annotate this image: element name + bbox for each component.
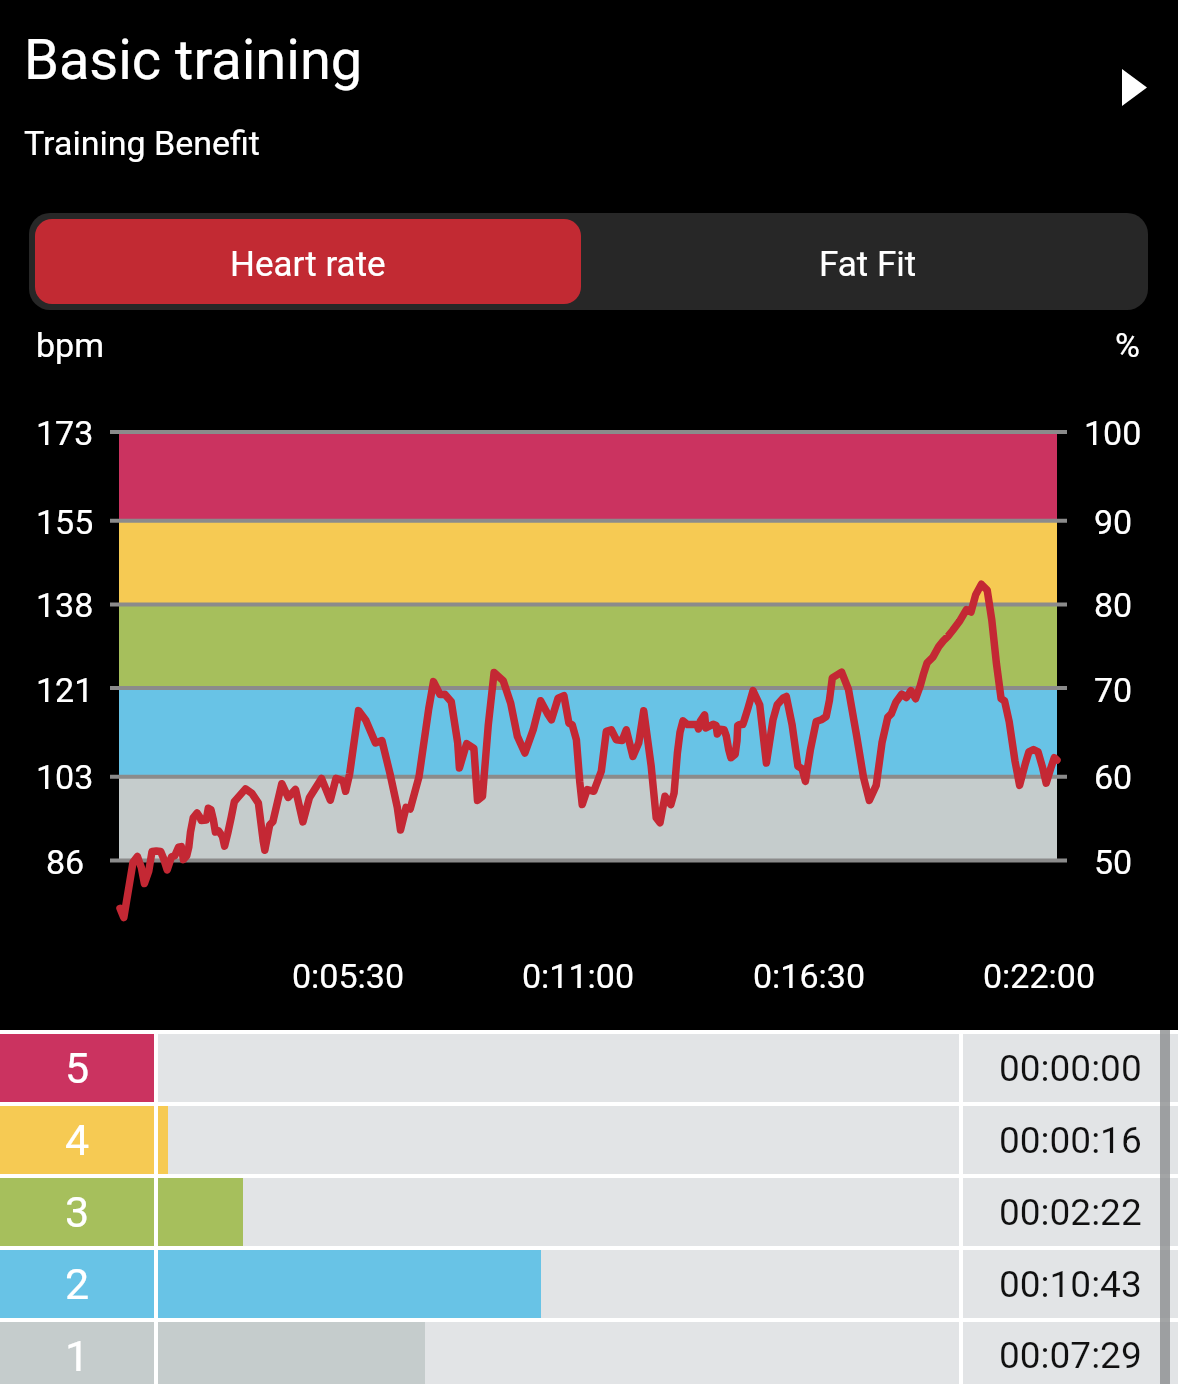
staticText: 00:00:00 [999,1047,1142,1090]
staticText: Training Benefit [24,123,260,163]
button[interactable]: 4 [0,1106,1178,1174]
staticText: 0:05:30 [292,956,405,996]
staticText: 90 [1094,502,1133,542]
staticText: 100 [1084,413,1142,453]
staticText: % [1115,325,1140,365]
button[interactable]: Heart rate [35,219,581,304]
staticText: 0:16:30 [753,956,866,996]
staticText: 5 [65,1043,90,1093]
staticText: 00:00:16 [999,1119,1142,1162]
staticText: 155 [36,502,94,542]
staticText: bpm [36,325,104,365]
staticText: 60 [1094,757,1133,797]
staticText: 00:10:43 [999,1263,1142,1306]
staticText: 121 [36,670,94,710]
staticText: 3 [65,1187,90,1237]
staticText: 0:22:00 [983,956,1096,996]
staticText: 70 [1094,670,1133,710]
button[interactable]: 5 [0,1034,1178,1102]
button[interactable]: 1 [0,1322,1178,1384]
staticText: 00:02:22 [999,1191,1142,1234]
staticText: 173 [36,413,94,453]
staticText: 103 [36,757,94,797]
button[interactable]: 3 [0,1178,1178,1246]
staticText: 80 [1094,585,1133,625]
staticText: 4 [65,1115,90,1165]
staticText: Basic training [24,27,363,93]
staticText: 138 [36,585,94,625]
button[interactable]: 2 [0,1250,1178,1318]
staticText: 50 [1094,842,1133,882]
staticText: 2 [65,1259,90,1309]
staticText: 00:07:29 [999,1334,1142,1377]
button[interactable]: Play [1103,56,1165,118]
button[interactable]: Fat Fit [587,213,1148,310]
staticText: 0:11:00 [522,956,635,996]
staticText: 86 [46,842,85,882]
staticText: Heart rate [230,244,386,285]
staticText: 1 [65,1331,90,1381]
staticText: Fat Fit [819,244,917,285]
